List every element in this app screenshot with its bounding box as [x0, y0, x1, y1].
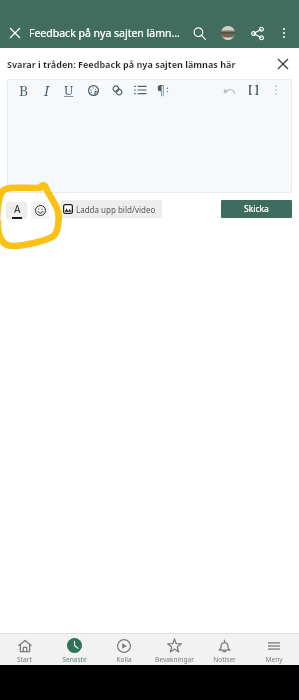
button[interactable]: Emoji — [31, 202, 49, 219]
staticText: Ladda upp bild/video — [76, 204, 156, 215]
button[interactable]: Paragraph style — [152, 79, 174, 101]
button[interactable]: Text format — [6, 202, 27, 219]
button[interactable]: Insert code — [242, 79, 264, 101]
button[interactable]: Bold — [13, 79, 35, 101]
button[interactable]: Start — [0, 633, 49, 665]
staticText: Kolla — [116, 655, 132, 664]
button[interactable]: More options — [273, 22, 295, 44]
staticText: U — [64, 81, 74, 99]
button[interactable]: More formatting — [265, 79, 287, 101]
button[interactable]: Close — [5, 23, 25, 43]
staticText: Skicka — [244, 203, 269, 215]
staticText: ¶ — [157, 82, 165, 98]
staticText: Senaste — [62, 655, 87, 664]
button[interactable]: Italic — [36, 79, 58, 101]
staticText: I — [44, 81, 50, 100]
button[interactable]: Underline — [58, 79, 80, 101]
staticText: B — [19, 81, 29, 100]
button[interactable]: Link — [106, 79, 128, 101]
button[interactable]: Share — [246, 22, 268, 44]
staticText: Feedback på nya sajten lämn… — [29, 26, 188, 40]
staticText: A — [14, 202, 21, 216]
button[interactable]: Notiser — [199, 633, 249, 665]
button[interactable]: Search — [188, 22, 210, 44]
staticText: Meny — [265, 655, 283, 664]
staticText: Bevakningar — [155, 655, 194, 664]
button[interactable]: Skicka — [221, 200, 292, 218]
button[interactable]: Dismiss — [272, 53, 294, 75]
button[interactable]: Bevakningar — [149, 633, 199, 665]
button[interactable]: Kolla — [99, 633, 149, 665]
button[interactable]: Senaste — [49, 633, 99, 665]
button[interactable]: Bulleted list — [129, 79, 151, 101]
staticText: Svarar i tråden: Feedback på nya sajten … — [7, 58, 272, 70]
staticText: Start — [17, 655, 32, 664]
button[interactable]: Profile — [217, 22, 239, 44]
button[interactable]: Undo — [218, 79, 240, 101]
button[interactable]: Ladda upp bild/video — [61, 200, 162, 218]
button[interactable]: Text colour — [82, 79, 104, 101]
staticText: Notiser — [213, 655, 236, 664]
button[interactable]: Meny — [249, 633, 299, 665]
